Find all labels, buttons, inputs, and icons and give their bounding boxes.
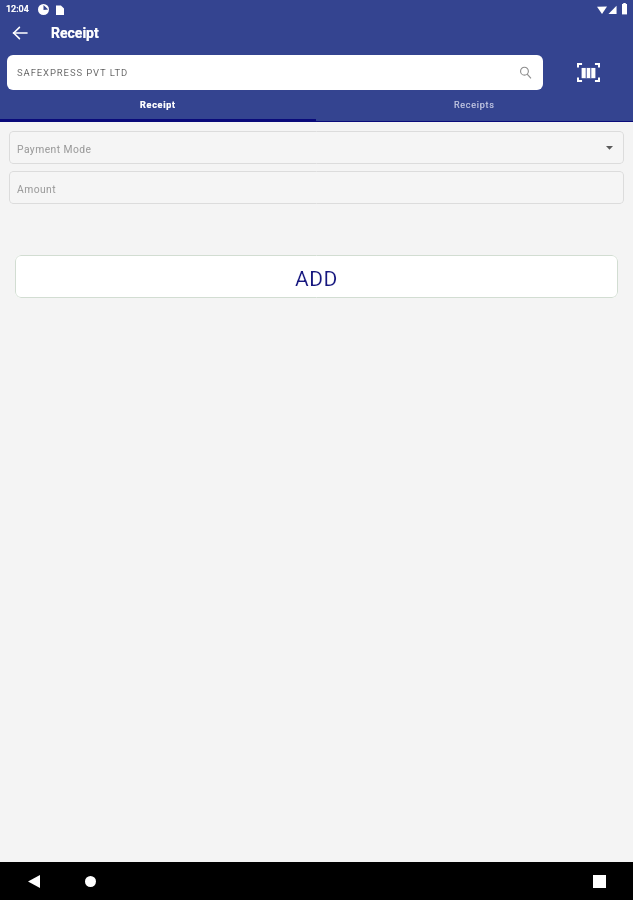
button[interactable]: Receipt xyxy=(0,90,316,122)
staticText: Receipt xyxy=(51,25,99,41)
button[interactable]: Back xyxy=(21,869,46,894)
button[interactable]: Back xyxy=(6,19,34,47)
staticText: Payment Mode xyxy=(17,143,92,155)
button[interactable]: Home xyxy=(78,869,103,894)
button[interactable]: SAFEXPRESS PVT LTD xyxy=(7,55,543,90)
staticText: Receipt xyxy=(140,100,176,111)
button[interactable]: Receipts xyxy=(316,90,633,122)
button[interactable]: ADD xyxy=(15,255,618,298)
button[interactable]: Scan barcode xyxy=(543,55,633,90)
staticText: SAFEXPRESS PVT LTD xyxy=(17,67,129,78)
staticText: Receipts xyxy=(454,100,495,111)
staticText: ADD xyxy=(295,267,338,292)
button[interactable]: Recents xyxy=(587,869,612,894)
button[interactable]: Amount xyxy=(9,171,624,204)
staticText: Amount xyxy=(17,183,57,195)
staticText: 12:04 xyxy=(6,4,29,15)
button[interactable]: Payment Mode xyxy=(9,131,624,164)
